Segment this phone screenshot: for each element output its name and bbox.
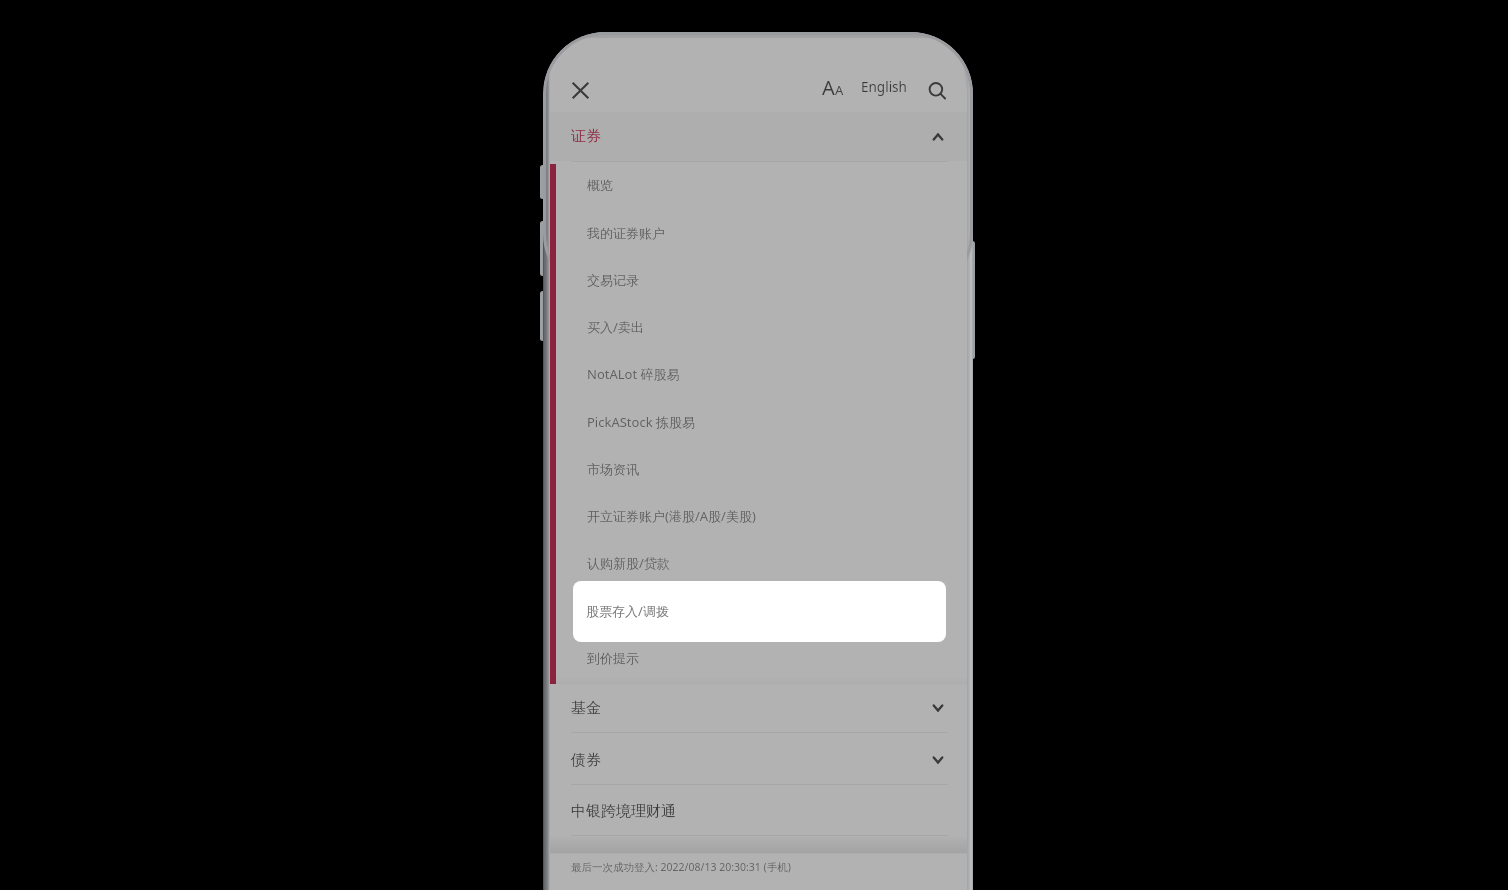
button[interactable]: PickAStock 拣股易 bbox=[550, 398, 967, 445]
button[interactable]: Search bbox=[915, 69, 957, 111]
button[interactable]: 到价提示 bbox=[550, 634, 967, 681]
staticText: 基金 bbox=[571, 699, 601, 718]
button[interactable]: 债券 bbox=[550, 735, 967, 785]
staticText: A bbox=[822, 74, 835, 101]
button[interactable]: 基金 bbox=[550, 683, 967, 733]
button[interactable]: 开立证券账户(港股/A股/美股) bbox=[550, 492, 967, 539]
button[interactable]: English bbox=[856, 68, 912, 106]
button[interactable]: Close bbox=[559, 69, 602, 112]
button[interactable]: 概览 bbox=[550, 161, 967, 208]
staticText: 债券 bbox=[571, 751, 601, 770]
staticText: 最后一次成功登入: 2022/08/13 20:30:31 (手机) bbox=[571, 860, 791, 874]
button[interactable]: 买入/卖出 bbox=[550, 303, 967, 350]
staticText: 股票存入/调拨 bbox=[586, 602, 669, 620]
button[interactable]: Text size bbox=[812, 66, 854, 109]
staticText: 交易记录 bbox=[587, 272, 639, 288]
staticText: 我的证券账户 bbox=[587, 225, 665, 241]
button[interactable]: 证券 bbox=[550, 112, 967, 161]
staticText: English bbox=[861, 78, 907, 96]
staticText: 买入/卖出 bbox=[587, 318, 644, 336]
button[interactable]: NotALot 碎股易 bbox=[550, 350, 967, 397]
button[interactable]: 中银跨境理财通 bbox=[550, 786, 967, 836]
staticText: 证券 bbox=[571, 127, 601, 146]
staticText: 开立证券账户(港股/A股/美股) bbox=[587, 507, 756, 525]
button[interactable]: 认购新股/贷款 bbox=[550, 539, 967, 586]
staticText: 认购新股/贷款 bbox=[587, 554, 670, 572]
staticText: 到价提示 bbox=[587, 650, 639, 666]
staticText: 股票存入/调拨 bbox=[587, 602, 670, 620]
staticText: 市场资讯 bbox=[587, 461, 639, 477]
staticText: NotALot 碎股易 bbox=[587, 365, 680, 383]
button[interactable]: 交易记录 bbox=[550, 256, 967, 303]
button[interactable]: 股票存入/调拨 bbox=[573, 581, 946, 642]
staticText: A bbox=[835, 81, 844, 99]
button[interactable]: 我的证券账户 bbox=[550, 209, 967, 256]
staticText: 概览 bbox=[587, 177, 613, 193]
staticText: PickAStock 拣股易 bbox=[587, 413, 695, 431]
staticText: 中银跨境理财通 bbox=[571, 802, 676, 821]
button[interactable]: 市场资讯 bbox=[550, 445, 967, 492]
button[interactable]: 股票存入/调拨 bbox=[550, 587, 967, 634]
